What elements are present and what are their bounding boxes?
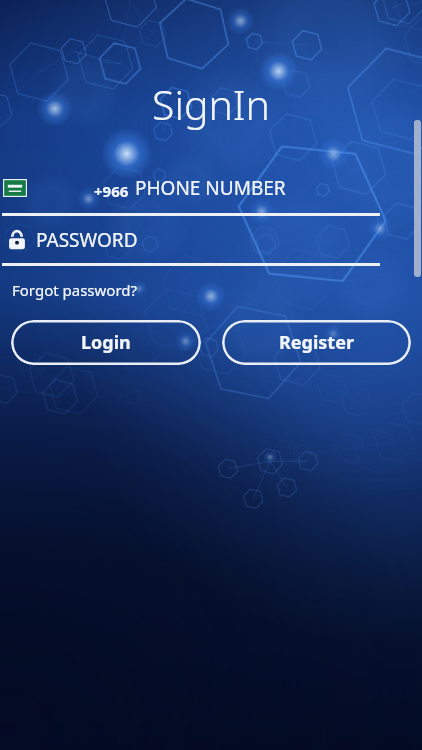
button[interactable]: Login bbox=[11, 320, 201, 365]
staticText: Register bbox=[279, 330, 354, 355]
button[interactable]: Register bbox=[222, 320, 411, 365]
other: Password bbox=[8, 229, 26, 251]
button[interactable]: Forgot password? bbox=[10, 278, 140, 302]
button[interactable]: Country code Saudi Arabia bbox=[0, 170, 422, 206]
staticText: Forgot password? bbox=[12, 280, 138, 300]
staticText: PHONE NUMBER bbox=[135, 175, 286, 201]
staticText: SignIn bbox=[0, 76, 422, 132]
staticText: +966 bbox=[94, 181, 129, 201]
other: Country code Saudi Arabia bbox=[3, 179, 27, 197]
staticText: Login bbox=[81, 330, 131, 355]
button[interactable]: Password bbox=[0, 225, 422, 255]
staticText: PASSWORD bbox=[36, 227, 138, 253]
